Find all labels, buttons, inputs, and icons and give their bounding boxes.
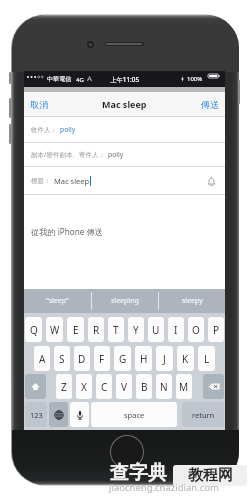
staticText: Mac sleep xyxy=(54,176,90,186)
staticText: L xyxy=(204,352,210,366)
button[interactable]: E xyxy=(67,317,84,342)
staticText: F xyxy=(99,352,105,366)
staticText: 中華電信 xyxy=(47,75,72,83)
staticText: 查字典 xyxy=(110,461,167,485)
button[interactable]: space xyxy=(91,402,177,427)
staticText: 4G xyxy=(76,75,84,83)
staticText: S xyxy=(59,352,65,366)
button[interactable]: L xyxy=(198,346,215,371)
button[interactable]: 標題： xyxy=(24,167,225,194)
button[interactable]: Y xyxy=(128,317,144,342)
button[interactable]: F xyxy=(94,346,110,371)
button[interactable]: H xyxy=(135,346,152,371)
button[interactable]: U xyxy=(148,317,164,342)
button[interactable]: O xyxy=(188,317,204,342)
staticText: space xyxy=(124,410,145,420)
button[interactable]: W xyxy=(46,317,63,342)
staticText: X xyxy=(81,380,87,394)
staticText: 123 xyxy=(30,410,43,420)
staticText: 教程网 xyxy=(188,466,233,485)
button[interactable]: K xyxy=(177,346,194,371)
button[interactable]: Q xyxy=(25,317,42,342)
button[interactable]: T xyxy=(108,317,124,342)
staticText: 傳送 xyxy=(201,99,219,110)
staticText: return xyxy=(192,410,215,420)
staticText: A xyxy=(39,352,46,366)
staticText: P xyxy=(213,323,220,337)
button[interactable]: V xyxy=(116,374,132,399)
button[interactable]: S xyxy=(54,346,70,371)
staticText: sleepy xyxy=(182,296,203,306)
button[interactable]: J xyxy=(156,346,173,371)
staticText: N xyxy=(160,380,168,394)
staticText: H xyxy=(140,352,148,366)
staticText: Z xyxy=(61,380,67,394)
staticText: Y xyxy=(133,323,139,337)
button[interactable]: P xyxy=(208,317,224,342)
staticText: "sleep" xyxy=(46,296,69,306)
staticText: W xyxy=(50,323,60,337)
button[interactable]: X xyxy=(76,374,92,399)
staticText: M xyxy=(179,380,189,394)
staticText: T xyxy=(113,323,119,337)
button[interactable]: Backspace xyxy=(203,374,224,399)
staticText: polly xyxy=(60,125,76,134)
button[interactable]: D xyxy=(74,346,90,371)
staticText: V xyxy=(121,380,127,394)
button[interactable]: 副本/密件副本、寄件人： xyxy=(24,143,225,166)
staticText: sleeping xyxy=(111,296,139,306)
staticText: polly xyxy=(108,150,124,159)
staticText: G xyxy=(119,352,127,366)
button[interactable]: Shift xyxy=(25,374,46,399)
staticText: D xyxy=(78,352,86,366)
button[interactable]: G xyxy=(114,346,131,371)
button[interactable]: Switch keyboard xyxy=(49,402,68,427)
button[interactable]: "sleep" xyxy=(24,289,91,313)
button[interactable]: Notify me xyxy=(204,174,218,188)
staticText: Mac sleep xyxy=(102,98,147,110)
button[interactable]: sleeping xyxy=(92,289,158,313)
button[interactable]: M xyxy=(176,374,192,399)
staticText: U xyxy=(152,323,160,337)
staticText: C xyxy=(101,380,108,394)
staticText: B xyxy=(141,380,148,394)
button[interactable]: B xyxy=(136,374,152,399)
button[interactable]: 收件人： xyxy=(24,117,225,142)
staticText: 副本/密件副本、寄件人： xyxy=(31,150,105,159)
staticText: R xyxy=(93,323,100,337)
button[interactable]: Z xyxy=(56,374,72,399)
button[interactable]: return xyxy=(182,402,224,427)
button[interactable]: N xyxy=(156,374,172,399)
staticText: 標題： xyxy=(31,177,51,185)
staticText: Q xyxy=(30,323,38,337)
staticText: I xyxy=(174,323,178,337)
staticText: O xyxy=(192,323,200,337)
button[interactable]: Dictation xyxy=(70,402,89,427)
staticText: K xyxy=(182,352,189,366)
button[interactable]: Home xyxy=(110,435,144,469)
button[interactable]: sleepy xyxy=(159,289,225,313)
staticText: 上午11:05 xyxy=(110,75,140,84)
button[interactable]: 取消 xyxy=(24,92,54,116)
staticText: 從我的 iPhone 傳送 xyxy=(31,226,103,237)
staticText: 收件人： xyxy=(31,126,57,134)
button[interactable]: A xyxy=(34,346,50,371)
button[interactable]: C xyxy=(96,374,112,399)
staticText: E xyxy=(73,323,79,337)
button[interactable]: R xyxy=(88,317,104,342)
staticText: 取消 xyxy=(30,99,48,110)
button[interactable]: 傳送 xyxy=(195,92,225,116)
staticText: jiaocheng.chazidian.com xyxy=(109,481,219,494)
staticText: 100% xyxy=(187,75,203,83)
staticText: J xyxy=(163,352,166,366)
button[interactable]: I xyxy=(168,317,184,342)
button[interactable]: 123 xyxy=(25,402,47,427)
